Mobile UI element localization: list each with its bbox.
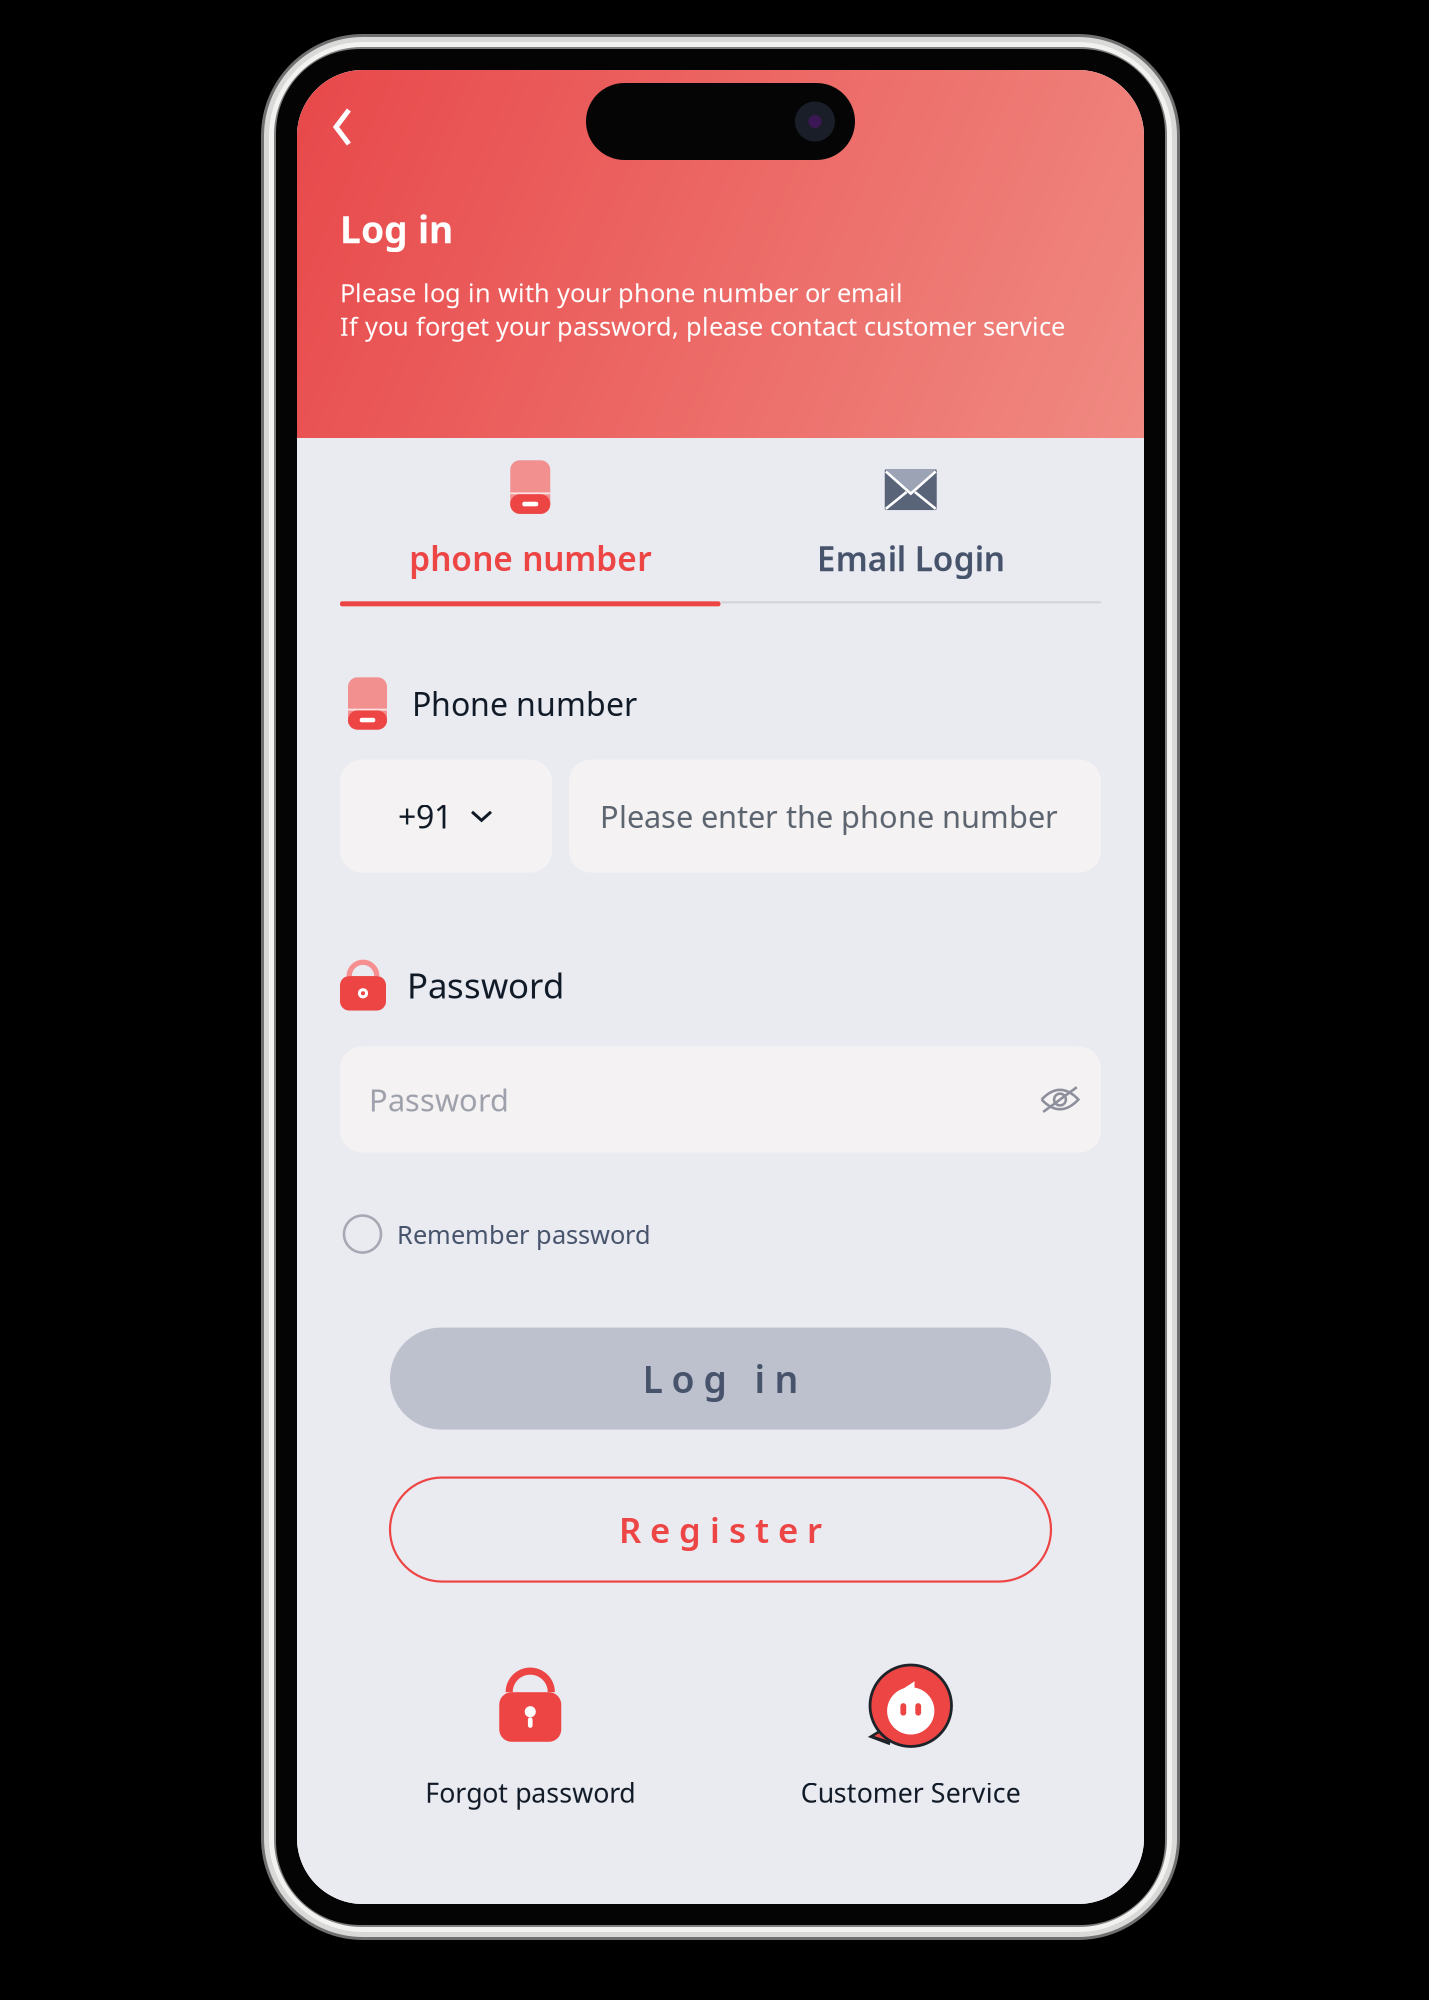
staticText: phone number [409, 536, 651, 580]
staticText: Please enter the phone number [600, 796, 1058, 836]
staticText: R e g i s t e r [619, 1506, 822, 1552]
staticText: Please log in with your phone number or … [340, 276, 1065, 343]
staticText: Password [407, 962, 564, 1008]
staticText: +91 [398, 795, 452, 837]
staticText: Password [369, 1079, 509, 1120]
button[interactable]: R e g i s t e r [390, 1477, 1051, 1581]
button[interactable]: Phone number field [569, 760, 1101, 873]
button[interactable]: phone number [340, 438, 720, 601]
button[interactable]: Country code +91 [340, 760, 552, 873]
staticText: Customer Service [801, 1775, 1021, 1810]
button[interactable]: Remember password [340, 1215, 651, 1252]
staticText: Log in [340, 204, 453, 254]
staticText: Forgot password [425, 1775, 635, 1810]
button[interactable]: Forgot password [340, 1667, 720, 1810]
button[interactable]: Password field [340, 1046, 1101, 1152]
button[interactable]: Email Login [720, 438, 1101, 601]
staticText: Email Login [817, 536, 1005, 580]
staticText: Remember password [397, 1217, 651, 1251]
staticText: L o g i n [642, 1354, 798, 1403]
staticText: Phone number [412, 682, 637, 725]
button[interactable]: Back [331, 96, 391, 158]
button[interactable]: Customer Service [720, 1668, 1101, 1810]
button[interactable]: L o g i n [390, 1327, 1051, 1429]
